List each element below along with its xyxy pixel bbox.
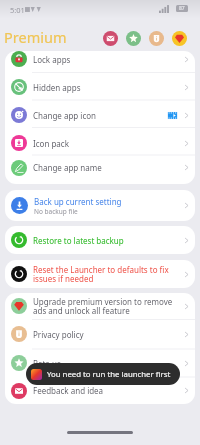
button[interactable]: Rate us	[126, 31, 141, 46]
button[interactable]: Feedback and idea	[5, 377, 195, 404]
staticText: Reset the Launcher to defaults to fix is…	[33, 264, 181, 285]
button[interactable]: Feedback	[103, 31, 118, 46]
button[interactable]: Privacy	[149, 31, 164, 46]
button[interactable]: Hidden apps	[5, 73, 195, 101]
staticText: 87	[179, 5, 185, 12]
staticText: Privacy policy	[33, 329, 181, 340]
staticText: Rate us	[33, 358, 181, 369]
staticText: Change app name	[33, 162, 181, 173]
button[interactable]: Change app icon	[5, 101, 195, 129]
button[interactable]: Upgrade premium version to remove ads an…	[5, 293, 195, 319]
staticText: Lock apps	[33, 54, 181, 65]
button[interactable]: Privacy policy	[5, 319, 195, 349]
button[interactable]: Premium	[172, 31, 187, 46]
button[interactable]: Change app name	[5, 157, 195, 178]
button[interactable]: You need to run the launcher first	[26, 363, 180, 385]
staticText: Upgrade premium version to remove ads an…	[33, 296, 181, 317]
staticText: 5:01	[10, 5, 25, 15]
staticText: Hidden apps	[33, 82, 181, 93]
staticText: Icon pack	[33, 138, 181, 149]
button[interactable]: Rate us	[5, 349, 195, 377]
staticText: Feedback and idea	[33, 385, 181, 396]
button[interactable]: Restore to latest backup	[5, 226, 195, 254]
staticText: You need to run the launcher first	[47, 369, 171, 380]
staticText: Back up current setting	[34, 196, 122, 207]
button[interactable]: Icon pack	[5, 129, 195, 157]
staticText: Restore to latest backup	[33, 235, 181, 246]
button[interactable]: Reset the Launcher to defaults to fix is…	[5, 260, 195, 288]
button[interactable]: Back up current setting	[5, 190, 195, 221]
staticText: No backup file	[34, 207, 78, 216]
staticText: Change app icon	[33, 110, 167, 121]
button[interactable]: Lock apps	[5, 51, 195, 73]
staticText: Premium	[4, 27, 67, 47]
